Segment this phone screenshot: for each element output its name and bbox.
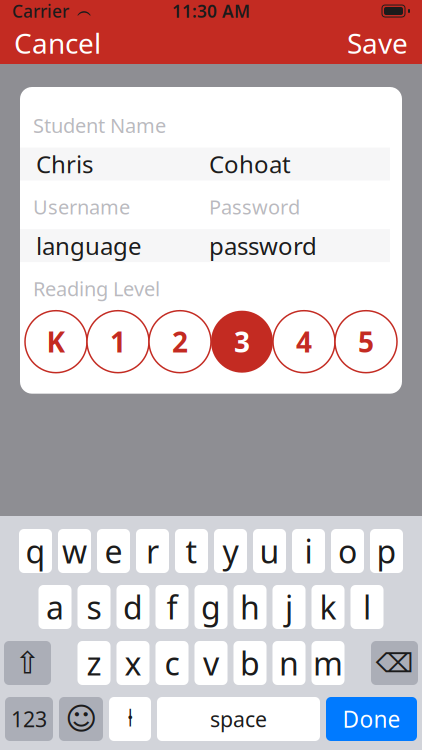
staticText: space bbox=[210, 705, 267, 733]
staticText: z bbox=[86, 642, 101, 684]
staticText: k bbox=[319, 586, 336, 628]
button[interactable]: p bbox=[370, 529, 403, 573]
staticText: 1 bbox=[110, 323, 126, 360]
button[interactable]: d bbox=[116, 585, 149, 629]
button[interactable]: f bbox=[155, 585, 188, 629]
button[interactable]: r bbox=[136, 529, 169, 573]
staticText: n bbox=[279, 642, 299, 684]
button[interactable]: m bbox=[311, 641, 344, 685]
staticText: l bbox=[363, 586, 371, 628]
staticText: c bbox=[164, 642, 179, 684]
staticText: u bbox=[259, 530, 279, 572]
staticText: Password bbox=[209, 194, 300, 220]
staticText: g bbox=[201, 586, 221, 628]
staticText: d bbox=[123, 586, 143, 628]
button[interactable]: K bbox=[25, 311, 87, 373]
staticText: Cancel bbox=[14, 24, 101, 62]
button[interactable]: Delete bbox=[371, 641, 418, 685]
staticText: Done bbox=[342, 704, 400, 734]
staticText: ︵ bbox=[69, 2, 92, 20]
staticText: w bbox=[62, 530, 87, 572]
staticText: s bbox=[86, 586, 101, 628]
staticText: ⌫ bbox=[375, 648, 413, 678]
button[interactable]: v bbox=[194, 641, 227, 685]
staticText: Student Name bbox=[33, 112, 166, 139]
staticText: ⇧ bbox=[14, 646, 40, 680]
staticText: Reading Level bbox=[33, 275, 160, 302]
staticText: r bbox=[146, 530, 159, 572]
staticText: 5 bbox=[358, 323, 374, 360]
button[interactable]: z bbox=[77, 641, 110, 685]
button[interactable]: j bbox=[272, 585, 305, 629]
staticText: 4 bbox=[296, 323, 312, 360]
button[interactable]: n bbox=[272, 641, 305, 685]
staticText: K bbox=[46, 323, 65, 360]
staticText: ⍿ bbox=[127, 707, 133, 731]
button[interactable]: u bbox=[253, 529, 286, 573]
staticText: language bbox=[36, 230, 142, 262]
button[interactable]: i bbox=[292, 529, 325, 573]
staticText: 11:30 AM bbox=[172, 0, 250, 22]
staticText: e bbox=[104, 530, 122, 572]
button[interactable]: k bbox=[311, 585, 344, 629]
staticText: t bbox=[185, 530, 197, 572]
button[interactable]: t bbox=[175, 529, 208, 573]
button[interactable]: space bbox=[157, 697, 320, 741]
button[interactable]: 1 bbox=[87, 311, 149, 373]
staticText: q bbox=[25, 530, 45, 572]
button[interactable]: Dictate bbox=[109, 697, 151, 741]
button[interactable]: e bbox=[97, 529, 130, 573]
button[interactable]: Save bbox=[335, 15, 420, 71]
button[interactable]: 3 bbox=[211, 311, 273, 373]
staticText: f bbox=[166, 586, 177, 628]
staticText: j bbox=[285, 586, 293, 628]
staticText: 123 bbox=[11, 705, 47, 733]
staticText: password bbox=[209, 230, 317, 262]
button[interactable]: o bbox=[331, 529, 364, 573]
button[interactable]: 5 bbox=[335, 311, 397, 373]
button[interactable]: s bbox=[77, 585, 110, 629]
button[interactable]: w bbox=[58, 529, 91, 573]
button[interactable]: 4 bbox=[273, 311, 335, 373]
button[interactable]: Emoji bbox=[59, 697, 103, 741]
staticText: m bbox=[313, 642, 343, 684]
button[interactable]: g bbox=[194, 585, 227, 629]
staticText: Username bbox=[33, 194, 130, 220]
staticText: 2 bbox=[172, 323, 188, 360]
staticText: Carrier bbox=[12, 0, 69, 22]
button[interactable]: y bbox=[214, 529, 247, 573]
staticText: b bbox=[240, 642, 260, 684]
staticText: ☺ bbox=[65, 702, 97, 736]
button[interactable]: Done bbox=[326, 697, 417, 741]
button[interactable]: 123 bbox=[5, 697, 53, 741]
button[interactable]: Cancel bbox=[2, 15, 113, 71]
button[interactable]: b bbox=[233, 641, 266, 685]
staticText: i bbox=[304, 530, 312, 572]
button[interactable]: c bbox=[155, 641, 188, 685]
staticText: 3 bbox=[234, 323, 250, 360]
staticText: Save bbox=[347, 24, 408, 62]
button[interactable]: x bbox=[116, 641, 149, 685]
button[interactable]: q bbox=[19, 529, 52, 573]
button[interactable]: a bbox=[38, 585, 71, 629]
button[interactable]: l bbox=[350, 585, 383, 629]
staticText: Cohoat bbox=[209, 148, 291, 180]
staticText: o bbox=[338, 530, 357, 572]
button[interactable]: 2 bbox=[149, 311, 211, 373]
button[interactable]: h bbox=[233, 585, 266, 629]
staticText: y bbox=[222, 530, 238, 572]
staticText: h bbox=[240, 586, 260, 628]
staticText: a bbox=[46, 586, 64, 628]
staticText: v bbox=[203, 642, 219, 684]
staticText: Chris bbox=[36, 148, 93, 180]
staticText: x bbox=[124, 642, 141, 684]
staticText: p bbox=[376, 530, 396, 572]
button[interactable]: Shift bbox=[4, 641, 51, 685]
